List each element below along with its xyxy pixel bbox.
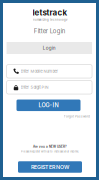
staticText: Enter Mobile Number [20, 69, 58, 74]
button[interactable]: LOG-IN [16, 99, 80, 111]
staticText: LOG-IN [38, 102, 58, 109]
button[interactable]: REGISTER NOW [18, 161, 82, 173]
button[interactable]: Forgot Password [64, 115, 90, 118]
staticText: Enter 5 digit PIN [20, 85, 48, 90]
staticText: Forgot Password [64, 115, 90, 118]
staticText: Fitter Login [34, 27, 66, 35]
staticText: Please Register with us to Increase your… [21, 150, 79, 153]
staticText: humanizing technology [33, 18, 67, 21]
button[interactable]: Enter Mobile Number [6, 64, 92, 78]
staticText: Login [43, 45, 56, 51]
button[interactable]: Enter 5 digit PIN [6, 80, 92, 94]
staticText: Are you a NEW USER? [33, 145, 67, 148]
staticText: letstrack [32, 8, 67, 17]
button[interactable]: Login [6, 42, 92, 54]
staticText: REGISTER NOW [31, 164, 69, 170]
